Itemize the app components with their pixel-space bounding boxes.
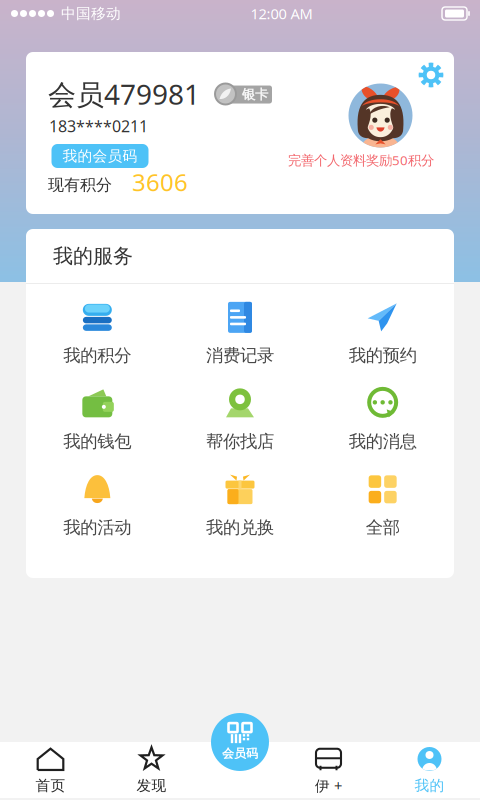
- staticText: 我的会员码: [62, 147, 137, 165]
- button[interactable]: 我的会员码: [51, 144, 148, 168]
- button[interactable]: 伊 +: [278, 738, 379, 800]
- button[interactable]: 会员码: [211, 713, 269, 771]
- staticText: 会员479981: [48, 75, 200, 113]
- button[interactable]: 首页: [0, 738, 101, 800]
- staticText: 我的活动: [63, 517, 131, 538]
- staticText: 帮你找店: [206, 431, 274, 452]
- button[interactable]: 我的消息: [311, 377, 454, 463]
- staticText: 12:00 AM: [250, 4, 312, 23]
- button[interactable]: 我的积分: [26, 291, 169, 377]
- staticText: 伊 +: [315, 776, 342, 795]
- staticText: 消费记录: [206, 345, 274, 366]
- staticText: 首页: [35, 776, 65, 794]
- staticText: 我的: [414, 776, 444, 794]
- staticText: 现有积分: [48, 175, 112, 195]
- staticText: 全部: [366, 517, 400, 538]
- staticText: 我的兑换: [206, 517, 274, 538]
- staticText: 我的积分: [63, 345, 131, 366]
- staticText: 中国移动: [61, 4, 121, 22]
- button[interactable]: 我的活动: [26, 463, 169, 549]
- staticText: 我的消息: [349, 431, 417, 452]
- button[interactable]: 我的兑换: [169, 463, 311, 549]
- staticText: 183****0211: [49, 115, 148, 137]
- button[interactable]: 我的预约: [311, 291, 454, 377]
- button[interactable]: 全部: [311, 463, 454, 549]
- button[interactable]: Settings: [418, 62, 443, 87]
- staticText: 我的钱包: [63, 431, 131, 452]
- staticText: 完善个人资料奖励50积分: [288, 151, 434, 169]
- button[interactable]: 帮你找店: [169, 377, 311, 463]
- button[interactable]: 我的钱包: [26, 377, 169, 463]
- button[interactable]: 发现: [101, 738, 202, 800]
- staticText: 我的服务: [53, 244, 133, 268]
- staticText: 3606: [132, 166, 188, 198]
- staticText: 银卡: [242, 86, 268, 103]
- staticText: 我的预约: [349, 345, 417, 366]
- button[interactable]: 消费记录: [169, 291, 311, 377]
- staticText: 发现: [136, 776, 166, 794]
- button[interactable]: 我的: [379, 738, 480, 800]
- staticText: 会员码: [222, 746, 258, 761]
